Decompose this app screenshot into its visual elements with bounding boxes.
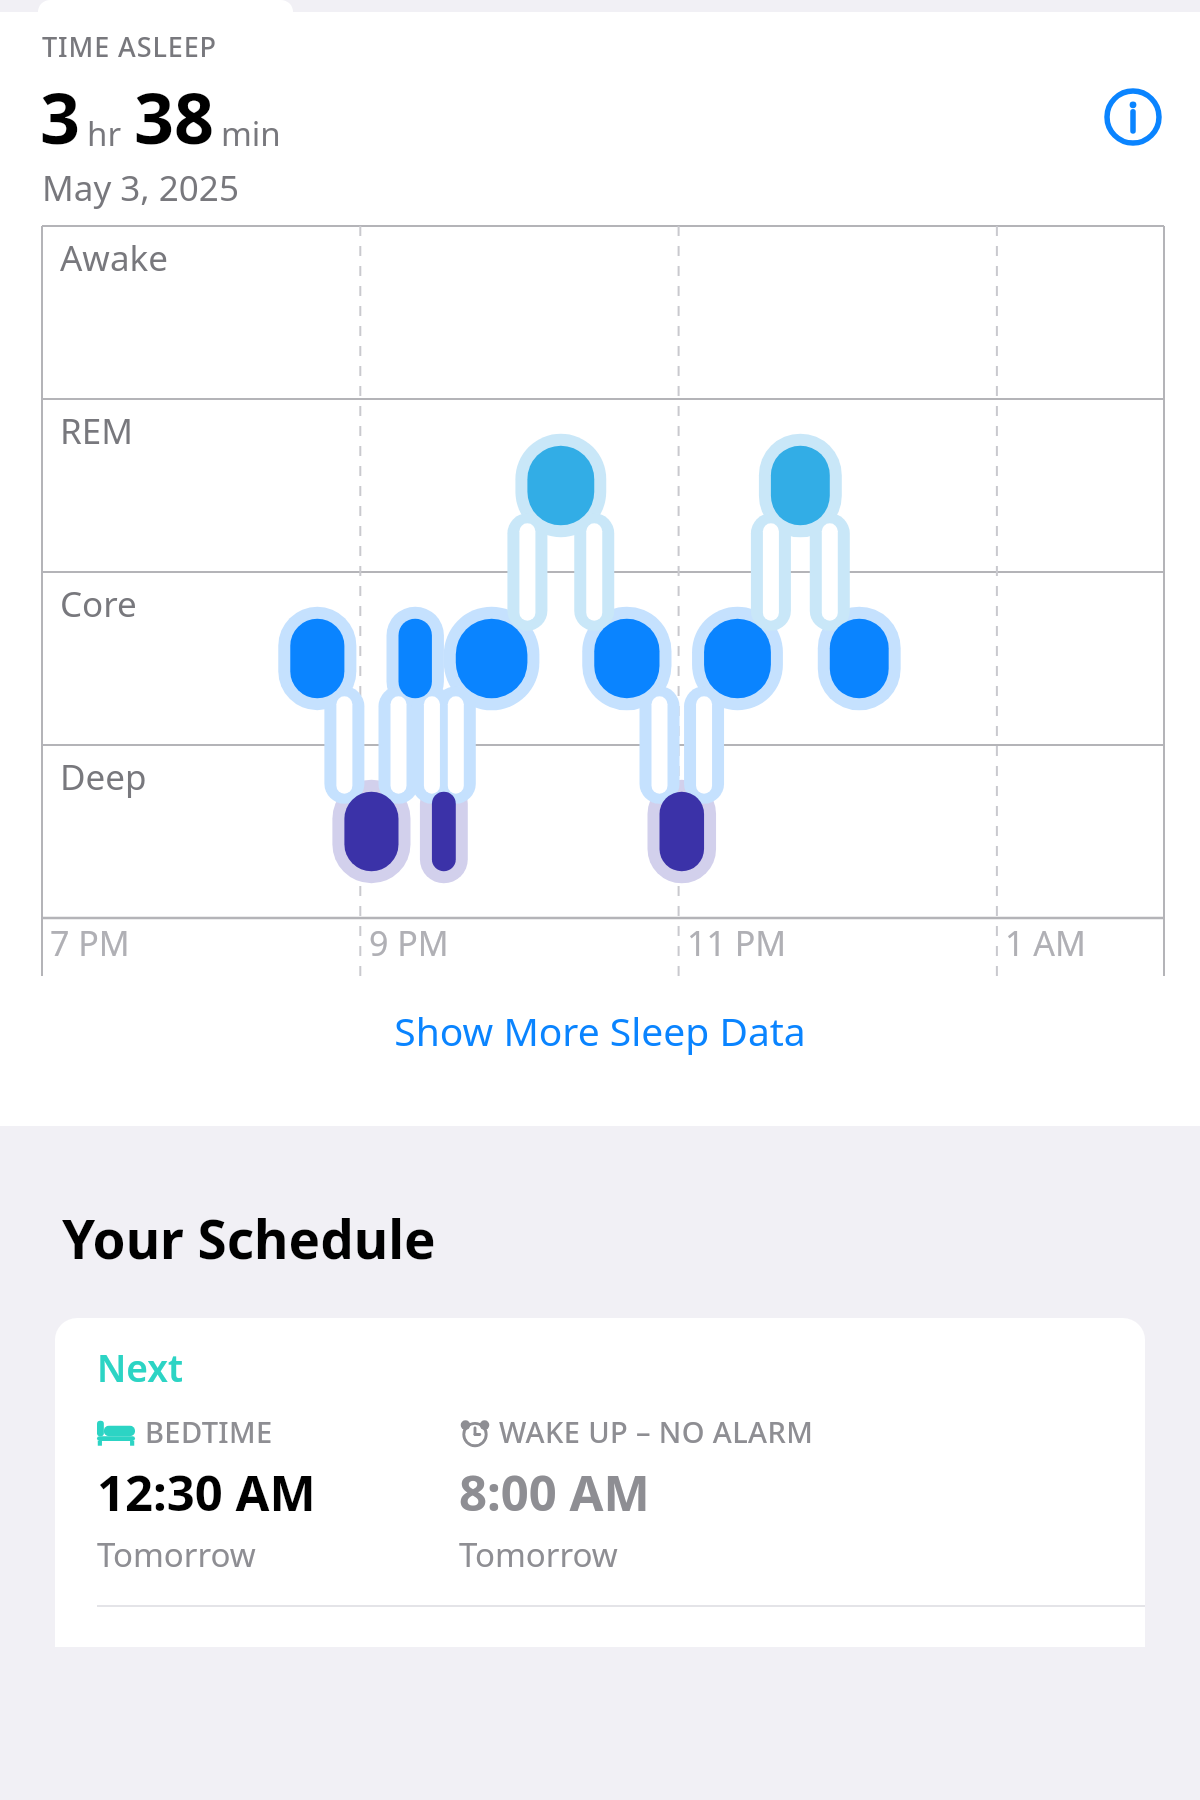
staticText: Awake — [60, 234, 168, 282]
staticText: Core — [60, 580, 137, 628]
staticText: REM — [60, 407, 133, 455]
staticText: Show More Sleep Data — [394, 1004, 806, 1057]
staticText: Your Schedule — [62, 1202, 436, 1274]
staticText: 3 — [40, 69, 81, 164]
button[interactable]: About time asleep — [1100, 84, 1166, 150]
staticText: 7 PM — [50, 920, 130, 966]
staticText: BEDTIME — [145, 1412, 273, 1451]
staticText: 9 PM — [369, 920, 449, 966]
staticText: Next — [97, 1342, 183, 1392]
staticText: 38 — [134, 69, 215, 164]
staticText: May 3, 2025 — [42, 164, 239, 212]
staticText: min — [221, 111, 281, 156]
button[interactable]: Show More Sleep Data — [0, 976, 1200, 1084]
staticText: 11 PM — [687, 920, 787, 966]
staticText: 1 AM — [1005, 920, 1086, 966]
button[interactable]: Next — [55, 1318, 1145, 1647]
staticText: Tomorrow — [459, 1532, 618, 1577]
staticText: 8:00 AM — [459, 1459, 650, 1526]
staticText: hr — [87, 111, 122, 156]
staticText: TIME ASLEEP — [42, 28, 217, 65]
staticText: 12:30 AM — [97, 1459, 316, 1526]
staticText: Tomorrow — [97, 1532, 256, 1577]
staticText: WAKE UP – NO ALARM — [499, 1412, 814, 1451]
staticText: Deep — [60, 753, 147, 801]
